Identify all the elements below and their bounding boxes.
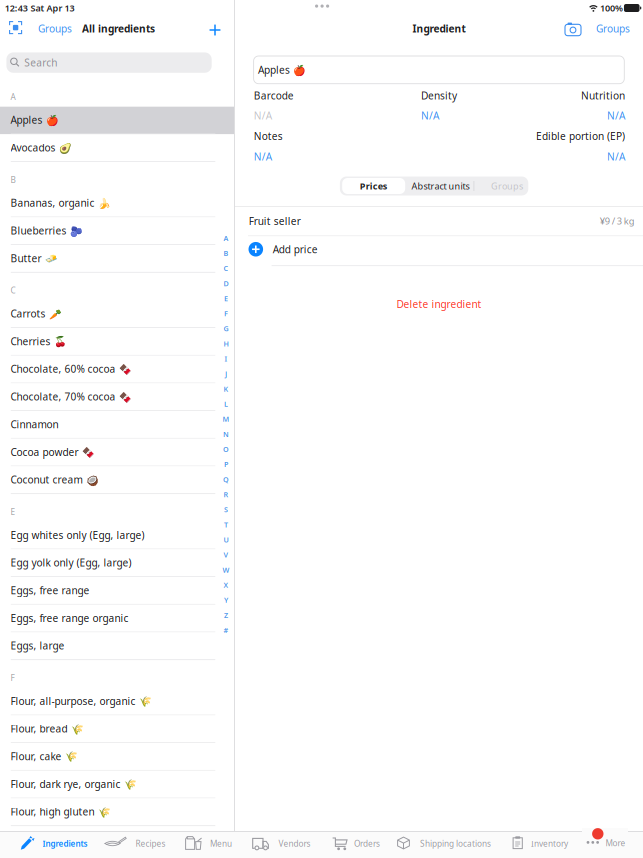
staticText: V: [223, 550, 228, 560]
button[interactable]: Add price: [248, 236, 643, 262]
button[interactable]: Blueberries 🫐: [0, 217, 234, 245]
staticText: Coconut cream 🥥: [10, 473, 98, 486]
button[interactable]: Groups: [38, 23, 76, 34]
staticText: Delete ingredient: [396, 297, 481, 311]
button[interactable]: N/A: [500, 150, 625, 162]
button[interactable]: Vendors: [248, 832, 315, 854]
button[interactable]: Egg whites only (Egg, large): [0, 522, 234, 549]
staticText: Vendors: [278, 838, 310, 849]
staticText: 12:43: [5, 2, 28, 14]
staticText: Menu: [210, 838, 232, 849]
button[interactable]: N/A: [254, 150, 314, 162]
staticText: Eggs, large: [10, 639, 64, 652]
staticText: Add price: [273, 242, 318, 256]
button[interactable]: Menu: [181, 832, 235, 854]
button[interactable]: Bananas, organic 🍌: [0, 190, 234, 217]
staticText: Search: [24, 56, 57, 69]
button[interactable]: Eggs, large: [0, 632, 234, 660]
staticText: G: [223, 324, 228, 333]
staticText: Chocolate, 70% cocoa 🍫: [10, 390, 131, 403]
staticText: Inventory: [531, 838, 568, 849]
button[interactable]: Avocados 🥑: [0, 134, 234, 162]
staticText: Bananas, organic 🍌: [10, 196, 110, 210]
staticText: J: [225, 369, 227, 379]
staticText: Butter 🧈: [10, 251, 57, 265]
staticText: I: [224, 354, 227, 364]
staticText: E: [224, 294, 228, 303]
staticText: Carrots 🥕: [10, 307, 61, 320]
staticText: Sat Apr 13: [30, 2, 74, 14]
staticText: Edible portion (EP): [536, 129, 625, 143]
button[interactable]: Flour, bread 🌾: [0, 715, 234, 743]
button[interactable]: N/A: [421, 109, 481, 121]
button[interactable]: Apples 🍎: [254, 56, 624, 84]
button[interactable]: Flour, high gluten 🌾: [0, 798, 234, 826]
button[interactable]: Add ingredient: [206, 21, 224, 39]
staticText: C: [223, 263, 228, 273]
staticText: 100%: [600, 2, 623, 14]
button[interactable]: Search: [6, 52, 212, 73]
staticText: Nutrition: [581, 89, 625, 102]
staticText: N: [223, 429, 229, 439]
staticText: Prices: [360, 180, 388, 192]
staticText: A: [10, 91, 15, 102]
staticText: A: [223, 233, 228, 243]
staticText: T: [224, 520, 228, 529]
staticText: Groups: [596, 22, 630, 35]
button[interactable]: Cherries 🍒: [0, 328, 234, 356]
button[interactable]: Abstract units: [409, 176, 472, 195]
button[interactable]: Camera: [564, 20, 581, 35]
button[interactable]: Inventory: [508, 832, 569, 854]
button[interactable]: Orders: [328, 832, 384, 854]
button[interactable]: Groups: [596, 23, 636, 34]
staticText: Orders: [354, 838, 380, 849]
button[interactable]: Delete ingredient: [364, 298, 514, 310]
button[interactable]: Flour, dark rye, organic 🌾: [0, 771, 234, 798]
staticText: Apples 🍎: [258, 63, 306, 77]
button[interactable]: Apples 🍎: [0, 107, 234, 134]
staticText: F: [224, 309, 228, 318]
button[interactable]: Eggs, free range: [0, 577, 234, 605]
button[interactable]: Recipes: [100, 832, 168, 854]
staticText: Ingredient: [412, 22, 465, 35]
staticText: Egg whites only (Egg, large): [10, 528, 144, 542]
staticText: N/A: [607, 109, 625, 122]
button[interactable]: Chocolate, 60% cocoa 🍫: [0, 356, 234, 383]
staticText: E: [10, 506, 15, 517]
button[interactable]: Prices: [342, 178, 405, 194]
button[interactable]: Coconut cream 🥥: [0, 466, 234, 494]
staticText: Groups: [38, 22, 72, 35]
staticText: N/A: [421, 109, 439, 122]
staticText: B: [223, 248, 228, 258]
staticText: U: [223, 535, 228, 544]
button[interactable]: Butter 🧈: [0, 245, 234, 273]
button[interactable]: Egg yolk only (Egg, large): [0, 549, 234, 577]
button[interactable]: Cinnamon: [0, 411, 234, 439]
staticText: S: [224, 505, 228, 514]
button[interactable]: Shipping locations: [393, 832, 494, 854]
staticText: Flour, all-purpose, organic 🌾: [10, 694, 151, 708]
staticText: Shipping locations: [420, 838, 491, 849]
staticText: Barcode: [254, 89, 294, 102]
button[interactable]: Cocoa powder 🍫: [0, 439, 234, 466]
button[interactable]: Ingredients: [16, 832, 91, 854]
staticText: Egg yolk only (Egg, large): [10, 556, 131, 569]
staticText: D: [223, 279, 228, 288]
button[interactable]: Chocolate, 70% cocoa 🍫: [0, 383, 234, 411]
staticText: ¥9 / 3 kg: [600, 215, 635, 227]
staticText: Flour, dark rye, organic 🌾: [10, 777, 136, 791]
button[interactable]: Flour, cake 🌾: [0, 743, 234, 771]
button[interactable]: Groups: [482, 176, 532, 195]
staticText: Cocoa powder 🍫: [10, 445, 94, 459]
button[interactable]: Flour, all-purpose, organic 🌾: [0, 688, 234, 715]
staticText: Eggs, free range: [10, 584, 89, 597]
staticText: N/A: [607, 150, 625, 163]
staticText: Chocolate, 60% cocoa 🍫: [10, 362, 131, 376]
button[interactable]: N/A: [500, 109, 625, 121]
staticText: Groups: [491, 180, 523, 192]
button[interactable]: More: [582, 828, 628, 850]
button[interactable]: Eggs, free range organic: [0, 605, 234, 632]
staticText: Fruit seller: [249, 214, 301, 228]
button[interactable]: Carrots 🥕: [0, 300, 234, 328]
staticText: Flour, bread 🌾: [10, 722, 83, 735]
